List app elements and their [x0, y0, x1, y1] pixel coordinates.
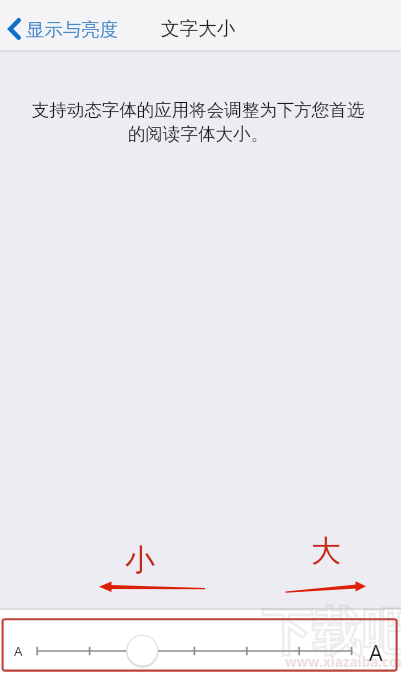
- staticText: 大: [311, 532, 341, 570]
- staticText: 小: [125, 541, 155, 579]
- staticText: A: [369, 638, 383, 667]
- staticText: www.xiazaiba.com: [285, 653, 401, 671]
- staticText: 支持动态字体的应用将会调整为下方您首选的阅读字体大小。: [29, 99, 367, 145]
- staticText: 下载吧: [262, 601, 401, 664]
- staticText: 文字大小: [161, 17, 236, 40]
- button[interactable]: Text size slider: [30, 634, 360, 668]
- staticText: A: [14, 642, 23, 660]
- staticText: 显示与亮度: [26, 18, 118, 41]
- button[interactable]: 显示与亮度: [2, 13, 119, 44]
